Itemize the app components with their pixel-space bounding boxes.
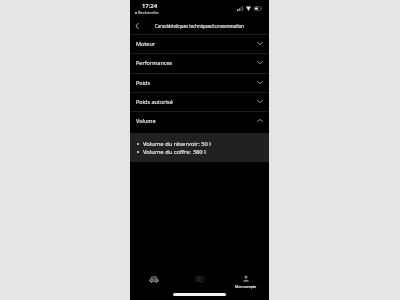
button[interactable]: Poids — [130, 73, 269, 92]
staticText: Volume du coffre: 380 l — [143, 148, 206, 156]
staticText: Poids — [136, 79, 151, 86]
staticText: Volume — [136, 117, 156, 124]
staticText: Caractéristiques techniques/consommation — [155, 23, 244, 29]
button[interactable]: Moteur — [130, 34, 269, 53]
staticText: Moteur — [136, 40, 156, 47]
button[interactable]: Services — [182, 275, 218, 283]
staticText: Volume du réservoir: 50 l — [143, 140, 211, 148]
button[interactable]: Performances — [130, 53, 269, 72]
staticText: 17:24 — [142, 2, 158, 10]
staticText: Recherche — [138, 10, 159, 16]
button[interactable]: Mon compte — [228, 275, 264, 289]
staticText: Poids autorisé — [136, 98, 173, 105]
button[interactable]: Volume — [130, 111, 269, 130]
button[interactable]: Véhicule — [136, 275, 172, 283]
staticText: Mon compte — [235, 284, 257, 289]
button[interactable]: Retour — [130, 18, 144, 33]
button[interactable]: Poids autorisé — [130, 92, 269, 111]
staticText: Performances — [136, 59, 173, 66]
